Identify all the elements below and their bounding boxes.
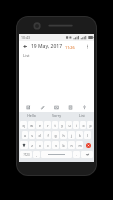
button[interactable]: b — [60, 141, 67, 149]
staticText: , — [36, 153, 37, 157]
staticText: b — [62, 143, 65, 148]
button[interactable]: w — [28, 121, 35, 129]
button[interactable]: o — [80, 121, 86, 129]
staticText: List — [23, 53, 30, 58]
staticText: h — [62, 133, 65, 138]
button[interactable]: Space — [41, 151, 72, 158]
staticText: 19 May, 2017 — [31, 43, 63, 50]
button[interactable]: More options — [83, 42, 92, 51]
button[interactable]: e — [36, 121, 43, 129]
staticText: q — [22, 123, 25, 128]
button[interactable]: g — [52, 131, 59, 139]
staticText: z — [31, 143, 33, 148]
staticText: a — [24, 133, 26, 138]
staticText: d — [38, 133, 41, 138]
staticText: 10:43 — [21, 35, 30, 40]
button[interactable]: q — [20, 121, 27, 129]
button[interactable]: Enter — [81, 151, 93, 158]
button[interactable]: Comma — [33, 151, 40, 158]
staticText: c — [47, 143, 49, 148]
button[interactable]: Shift — [20, 141, 28, 149]
button[interactable]: c — [44, 141, 51, 149]
button[interactable]: s — [29, 131, 35, 139]
button[interactable]: p — [87, 121, 93, 129]
staticText: r — [47, 123, 49, 128]
button[interactable]: d — [36, 131, 43, 139]
button[interactable]: List — [69, 112, 94, 119]
button[interactable]: ?123 — [20, 151, 32, 158]
button[interactable]: y — [59, 121, 65, 129]
button[interactable]: t — [52, 121, 58, 129]
staticText: e — [39, 123, 41, 128]
staticText: n — [70, 143, 73, 148]
button[interactable]: Backspace — [84, 141, 93, 149]
staticText: f — [47, 133, 49, 138]
button[interactable]: Hello — [19, 112, 44, 119]
staticText: y — [61, 123, 63, 128]
button[interactable]: v — [52, 141, 59, 149]
staticText: k — [79, 133, 81, 138]
button[interactable]: m — [76, 141, 83, 149]
staticText: p — [89, 123, 92, 128]
button[interactable]: x — [36, 141, 43, 149]
button[interactable]: z — [29, 141, 35, 149]
staticText: Sorry — [52, 113, 61, 118]
staticText: w — [30, 123, 33, 128]
button[interactable]: Insert image — [52, 103, 61, 112]
staticText: u — [68, 123, 71, 128]
staticText: l — [87, 133, 88, 138]
button[interactable]: Attach — [66, 103, 75, 112]
button[interactable]: h — [60, 131, 67, 139]
staticText: s — [31, 133, 33, 138]
staticText: List — [79, 113, 85, 118]
staticText: 11:26 — [65, 45, 75, 50]
button[interactable]: f — [44, 131, 51, 139]
staticText: Hello — [27, 113, 36, 118]
button[interactable]: a — [22, 131, 28, 139]
staticText: o — [82, 123, 85, 128]
button[interactable]: Checklist — [24, 103, 33, 112]
button[interactable]: Back — [21, 42, 30, 51]
button[interactable]: r — [44, 121, 51, 129]
button[interactable]: Record audio — [80, 103, 89, 112]
button[interactable]: j — [68, 131, 75, 139]
button[interactable]: i — [73, 121, 79, 129]
button[interactable]: Period — [73, 151, 80, 158]
staticText: i — [76, 123, 77, 128]
button[interactable]: Sorry — [44, 112, 69, 119]
staticText: ?123 — [23, 153, 30, 157]
staticText: g — [54, 133, 57, 138]
staticText: j — [71, 133, 72, 138]
button[interactable]: k — [76, 131, 83, 139]
button[interactable]: n — [68, 141, 75, 149]
button[interactable]: l — [84, 131, 91, 139]
staticText: x — [39, 143, 41, 148]
button[interactable]: Draw — [38, 103, 47, 112]
staticText: m — [78, 143, 82, 148]
staticText: . — [76, 153, 77, 157]
staticText: v — [55, 143, 57, 148]
staticText: t — [54, 123, 56, 128]
button[interactable]: u — [66, 121, 72, 129]
